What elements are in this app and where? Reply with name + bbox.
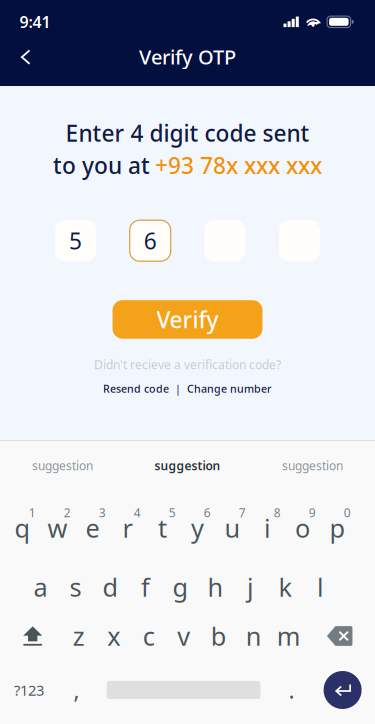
staticText: Resend code bbox=[103, 382, 169, 396]
staticText: f bbox=[141, 570, 150, 604]
staticText: Verify bbox=[156, 304, 218, 334]
button[interactable]: 2 bbox=[40, 502, 75, 548]
button[interactable]: 6 bbox=[130, 220, 171, 261]
button[interactable]: c bbox=[131, 613, 166, 659]
staticText: v bbox=[177, 619, 190, 653]
staticText: . bbox=[289, 675, 295, 705]
staticText: to you at bbox=[53, 150, 150, 180]
staticText: 0 bbox=[344, 504, 351, 520]
button[interactable]: 5 bbox=[145, 502, 180, 548]
staticText: a bbox=[34, 570, 48, 604]
button[interactable]: Shift bbox=[15, 613, 61, 659]
staticText: i bbox=[264, 511, 271, 545]
staticText: g bbox=[173, 570, 189, 604]
staticText: suggestion bbox=[154, 457, 220, 473]
button[interactable]: . bbox=[265, 667, 319, 713]
staticText: k bbox=[279, 570, 293, 604]
staticText: e bbox=[86, 511, 100, 545]
staticText: Didn't recieve a verification code? bbox=[94, 357, 281, 373]
button[interactable]: f bbox=[128, 564, 163, 610]
staticText: Verify OTP bbox=[139, 43, 236, 70]
button[interactable]: h bbox=[198, 564, 233, 610]
button[interactable]: d bbox=[93, 564, 128, 610]
staticText: h bbox=[208, 570, 224, 604]
button[interactable]: Space bbox=[101, 667, 265, 713]
staticText: 7 bbox=[239, 504, 246, 520]
button[interactable]: z bbox=[61, 613, 96, 659]
staticText: 9 bbox=[309, 504, 316, 520]
button[interactable]: 6 bbox=[180, 502, 215, 548]
staticText: 3 bbox=[99, 504, 106, 520]
staticText: j bbox=[247, 570, 254, 604]
button[interactable]: 0 bbox=[320, 502, 355, 548]
button[interactable]: suggestion bbox=[250, 440, 375, 490]
button[interactable]: m bbox=[271, 613, 306, 659]
staticText: 6 bbox=[144, 226, 157, 256]
staticText: t bbox=[158, 511, 167, 545]
button[interactable]: suggestion bbox=[0, 440, 125, 490]
button[interactable]: Resend code bbox=[103, 382, 169, 396]
button[interactable]: n bbox=[236, 613, 271, 659]
staticText: w bbox=[48, 511, 68, 545]
staticText: suggestion bbox=[32, 457, 93, 473]
staticText: 5 bbox=[69, 226, 82, 256]
button[interactable]: suggestion bbox=[125, 440, 250, 490]
staticText: suggestion bbox=[282, 457, 343, 473]
button[interactable]: 3 bbox=[75, 502, 110, 548]
button[interactable]: ?123 bbox=[6, 667, 53, 713]
button[interactable]: 8 bbox=[250, 502, 285, 548]
staticText: o bbox=[295, 511, 310, 545]
button[interactable]: 7 bbox=[215, 502, 250, 548]
button[interactable]: k bbox=[268, 564, 303, 610]
staticText: Change number bbox=[187, 382, 272, 396]
button[interactable]: l bbox=[303, 564, 338, 610]
button[interactable]: Back bbox=[0, 41, 53, 73]
button[interactable]: , bbox=[53, 667, 101, 713]
button[interactable]: b bbox=[201, 613, 236, 659]
staticText: s bbox=[70, 570, 82, 604]
staticText: b bbox=[211, 619, 227, 653]
staticText: 1 bbox=[29, 504, 36, 520]
staticText: 4 bbox=[134, 504, 141, 520]
staticText: r bbox=[123, 511, 133, 545]
button[interactable]: s bbox=[58, 564, 93, 610]
staticText: | bbox=[175, 382, 181, 396]
staticText: n bbox=[246, 619, 262, 653]
staticText: ?123 bbox=[14, 680, 44, 700]
staticText: 8 bbox=[274, 504, 281, 520]
staticText: Enter 4 digit code sent bbox=[65, 118, 309, 148]
staticText: 5 bbox=[169, 504, 176, 520]
button[interactable]: 9 bbox=[285, 502, 320, 548]
staticText: m bbox=[277, 619, 301, 653]
button[interactable]: Backspace bbox=[306, 613, 352, 659]
staticText: x bbox=[107, 619, 120, 653]
button[interactable]: Verify bbox=[112, 300, 262, 339]
staticText: 6 bbox=[204, 504, 211, 520]
button[interactable]: a bbox=[23, 564, 58, 610]
staticText: u bbox=[225, 511, 241, 545]
staticText: d bbox=[103, 570, 119, 604]
staticText: y bbox=[191, 511, 204, 545]
staticText: 9:41 bbox=[19, 11, 50, 32]
staticText: +93 78x xxx xxx bbox=[155, 150, 322, 180]
staticText: 2 bbox=[64, 504, 71, 520]
staticText: c bbox=[143, 619, 155, 653]
button[interactable]: Change number bbox=[187, 382, 272, 396]
staticText: z bbox=[73, 619, 85, 653]
button[interactable]: 5 bbox=[55, 220, 96, 261]
button[interactable]: 4 bbox=[110, 502, 145, 548]
button[interactable]: j bbox=[233, 564, 268, 610]
button[interactable]: 1 bbox=[5, 502, 40, 548]
button[interactable]: g bbox=[163, 564, 198, 610]
button[interactable]: Return bbox=[319, 666, 367, 714]
staticText: , bbox=[74, 675, 80, 705]
button[interactable]: v bbox=[166, 613, 201, 659]
staticText: l bbox=[317, 570, 324, 604]
staticText: p bbox=[330, 511, 346, 545]
button[interactable]: x bbox=[96, 613, 131, 659]
staticText: q bbox=[15, 511, 31, 545]
